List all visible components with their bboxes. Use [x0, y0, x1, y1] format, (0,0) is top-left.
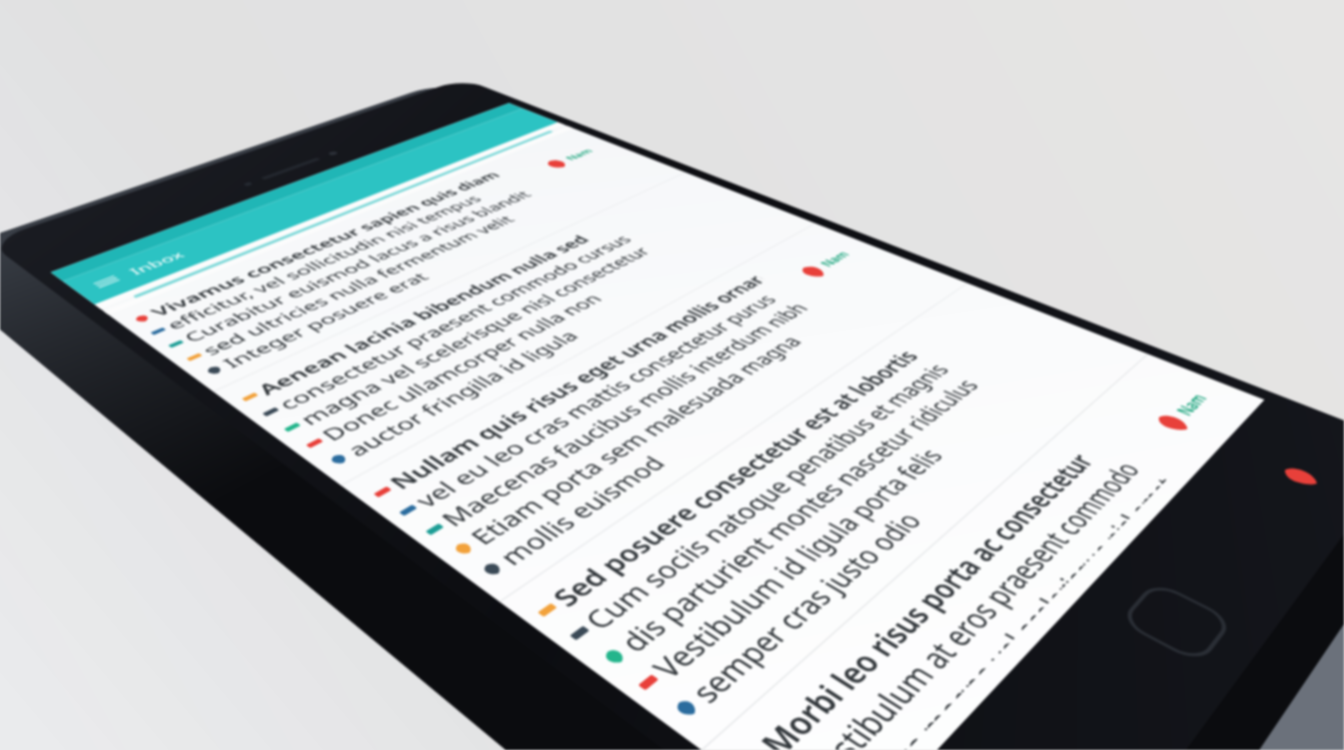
- staticText: Nam: [812, 249, 858, 269]
- staticText: Sed posuere consectetur est at lobortis: [541, 346, 1021, 613]
- staticText: sed ultricies nulla fermentum velit: [189, 213, 521, 359]
- staticText: Nam: [1158, 390, 1225, 419]
- staticText: efficitur, vel sollicitudin nisi tempus: [153, 192, 488, 333]
- staticText: Donec ullamcorper nulla non: [309, 290, 608, 445]
- staticText: Curabitur euismod lacus a risus blandit: [171, 188, 537, 345]
- staticText: dis parturient montes nascetur ridiculus: [609, 374, 1103, 659]
- staticText: Morbi leo risus porta ac consectetur: [716, 448, 1258, 750]
- staticText: magna vel scelerisque nisl consectetur: [287, 244, 667, 429]
- other: Menu: [82, 273, 131, 291]
- button[interactable]: Menu: [46, 108, 559, 305]
- staticText: Maecenas faucibus mollis interdum nibh: [429, 299, 872, 532]
- staticText: Nullam quis risus eget urna mollis ornar…: [377, 272, 816, 494]
- button[interactable]: Aenean lacinia bibendum nulla sed: [171, 172, 891, 485]
- staticText: Vestibulum id ligula porta felis: [636, 443, 1033, 685]
- staticText: cursus magna vel scelerisque nisl amet: [776, 472, 1344, 750]
- staticText: mollis euismod: [487, 451, 680, 571]
- staticText: Nam: [561, 147, 596, 162]
- staticText: Inbox: [118, 248, 194, 277]
- button[interactable]: Vivamus consectetur sapien quis diam: [60, 128, 710, 391]
- button[interactable]: Sed posuere consectetur est at lobortis: [485, 283, 1344, 750]
- button[interactable]: Morbi leo risus porta ac consectetur: [672, 354, 1344, 750]
- staticText: auctor fringilla id ligula: [334, 327, 586, 461]
- staticText: Integer posuere erat: [210, 269, 436, 371]
- button[interactable]: Nullam quis risus eget urna mollis ornar…: [309, 223, 1116, 601]
- staticText: vestibulum at eros praesent commodo: [746, 456, 1329, 750]
- staticText: Etiam porta sem malesuada magna: [458, 332, 858, 550]
- staticText: semper cras justo odio: [669, 506, 989, 710]
- staticText: Vivamus consectetur sapien quis diam: [138, 169, 507, 320]
- staticText: Cum sociis natoque penatibus et magnis: [574, 359, 1063, 636]
- staticText: consectetur praesent commodo cursus: [265, 232, 644, 414]
- staticText: vel eu leo cras mattis consectetur purus: [402, 291, 829, 512]
- staticText: Aenean lacinia bibendum nulla sed: [245, 232, 595, 399]
